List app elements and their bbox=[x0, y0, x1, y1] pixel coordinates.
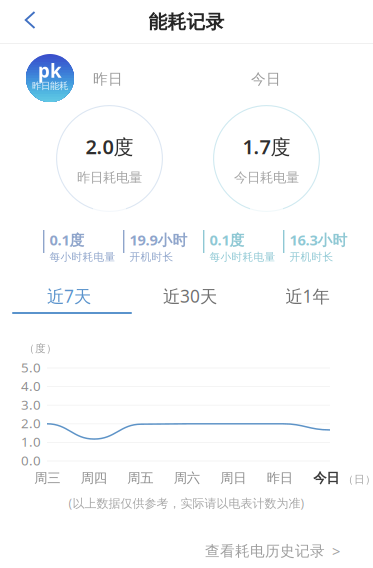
staticText: 周日 bbox=[220, 470, 246, 486]
staticText: 19.9小时 bbox=[129, 230, 187, 249]
staticText: > bbox=[332, 541, 340, 561]
staticText: 能耗记录 bbox=[148, 10, 224, 33]
staticText: 周五 bbox=[127, 470, 153, 486]
staticText: 4.0 bbox=[21, 377, 41, 395]
button[interactable]: 近30天 bbox=[138, 274, 242, 318]
staticText: 近1年 bbox=[285, 284, 329, 307]
staticText: 昨日 bbox=[267, 470, 293, 486]
staticText: 今日 bbox=[251, 70, 281, 88]
staticText: 每小时耗电量 bbox=[49, 250, 115, 264]
staticText: 昨日耗电量 bbox=[77, 169, 142, 186]
staticText: 2.0 bbox=[21, 414, 41, 432]
staticText: 今日耗电量 bbox=[234, 169, 299, 186]
button[interactable]: 近7天 bbox=[0, 274, 138, 318]
staticText: 周六 bbox=[174, 470, 200, 486]
staticText: 开机时长 bbox=[129, 250, 173, 264]
staticText: （度） bbox=[24, 342, 57, 355]
staticText: pk bbox=[38, 58, 62, 83]
staticText: 周四 bbox=[81, 470, 107, 486]
staticText: 昨日 bbox=[93, 70, 123, 88]
staticText: 0.1度 bbox=[49, 230, 84, 249]
button[interactable]: 近1年 bbox=[242, 274, 373, 318]
staticText: 查看耗电历史记录 bbox=[205, 542, 325, 560]
button[interactable]: 查看耗电历史记录 bbox=[195, 540, 340, 562]
staticText: 近7天 bbox=[47, 284, 91, 307]
staticText: 0.1度 bbox=[209, 230, 244, 249]
staticText: 每小时耗电量 bbox=[209, 250, 275, 264]
staticText: （日） bbox=[343, 473, 373, 486]
staticText: 0.0 bbox=[21, 451, 41, 469]
staticText: 周三 bbox=[34, 470, 60, 486]
staticText: 昨日能耗 bbox=[32, 80, 68, 92]
staticText: 1.7度 bbox=[242, 133, 290, 160]
staticText: 今日 bbox=[313, 470, 339, 486]
button[interactable]: 返回 bbox=[0, 0, 44, 42]
staticText: 5.0 bbox=[21, 358, 41, 376]
staticText: 近30天 bbox=[163, 284, 217, 307]
staticText: 开机时长 bbox=[289, 250, 333, 264]
staticText: 16.3小时 bbox=[289, 230, 347, 249]
staticText: (以上数据仅供参考，实际请以电表计数为准) bbox=[68, 495, 304, 511]
staticText: 2.0度 bbox=[85, 133, 133, 160]
staticText: 3.0 bbox=[21, 396, 41, 413]
staticText: 1.0 bbox=[21, 433, 41, 450]
